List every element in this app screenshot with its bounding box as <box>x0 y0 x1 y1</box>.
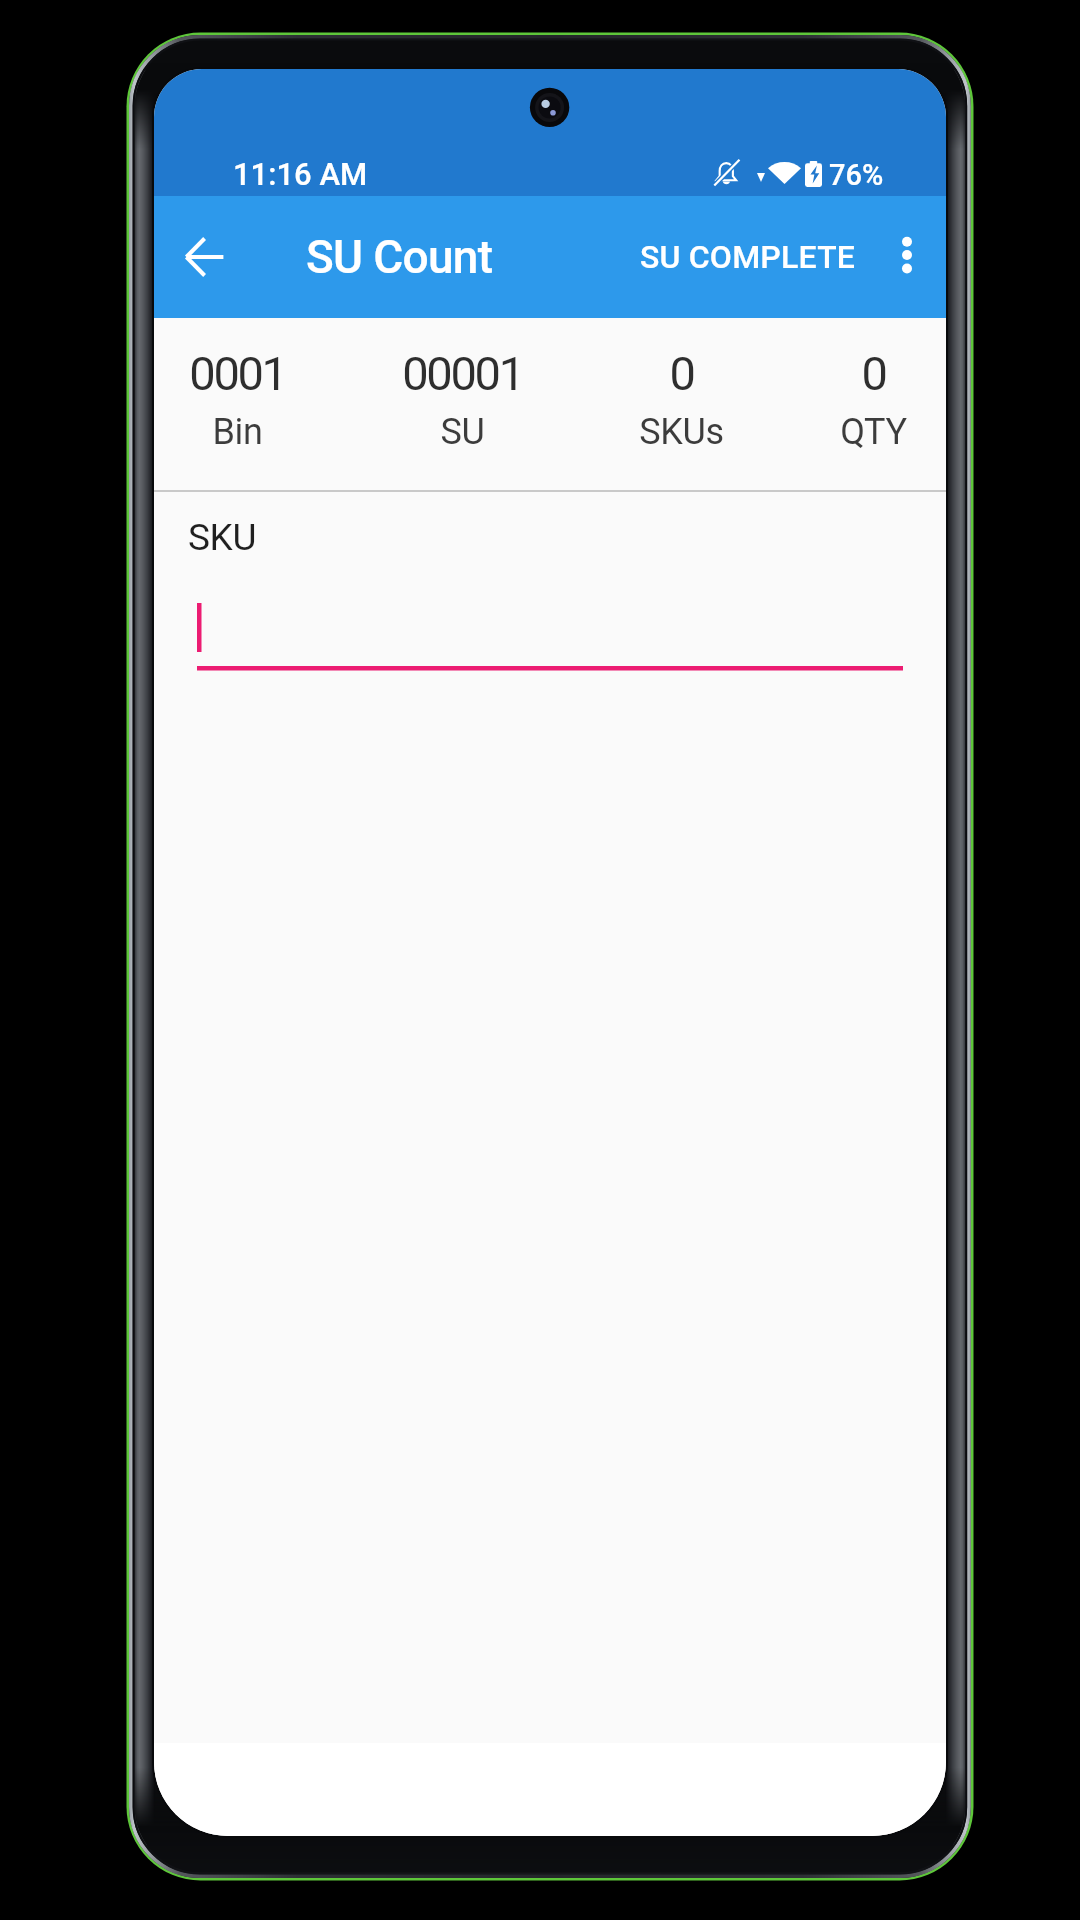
staticText: SKU <box>188 516 256 559</box>
staticText: 11:16 AM <box>233 156 368 192</box>
staticText: SU COMPLETE <box>640 238 856 276</box>
staticText: 00001 <box>402 346 523 401</box>
button[interactable] <box>188 592 904 682</box>
staticText: SKUs <box>639 411 724 453</box>
staticText: 0001 <box>189 346 286 401</box>
button[interactable]: SU COMPLETE <box>624 212 872 302</box>
staticText: 76% <box>829 158 884 192</box>
staticText: SU <box>440 411 485 453</box>
button[interactable]: Back <box>154 206 256 308</box>
staticText: 0 <box>669 346 694 401</box>
staticText: Bin <box>212 411 263 453</box>
staticText: SU Count <box>306 230 493 284</box>
button[interactable]: More options <box>865 215 946 299</box>
staticText: 0 <box>861 346 886 401</box>
staticText: QTY <box>840 411 907 453</box>
